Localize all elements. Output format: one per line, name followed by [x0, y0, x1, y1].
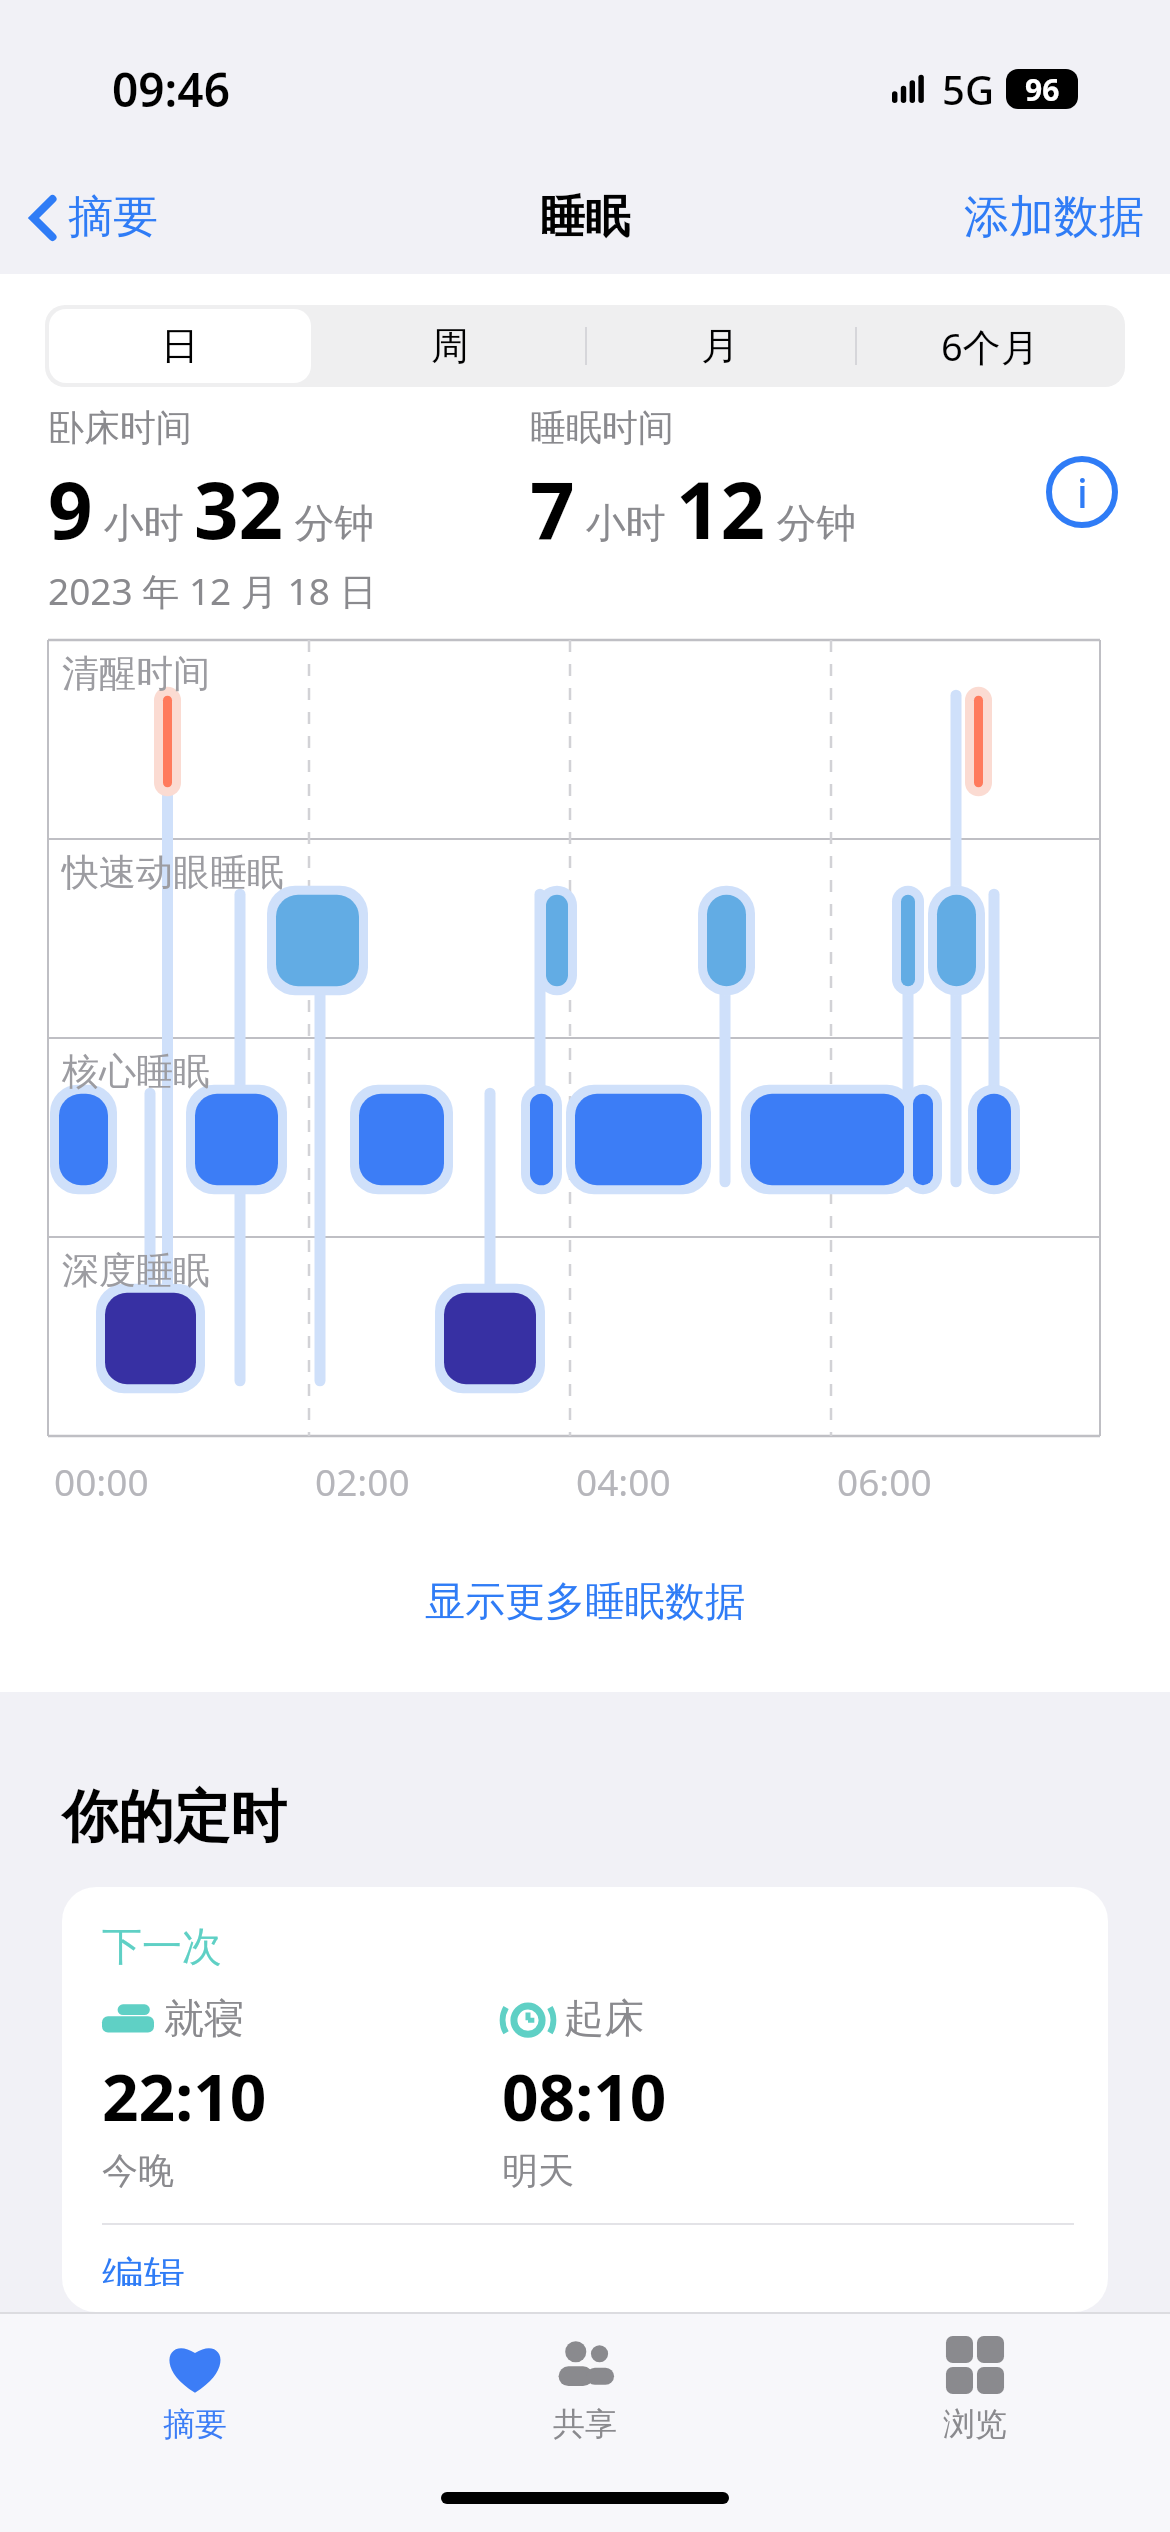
- button[interactable]: 摘要: [0, 2314, 390, 2464]
- staticText: 共享: [553, 2404, 617, 2444]
- staticText: 摘要: [68, 189, 158, 246]
- staticText: 5G: [942, 62, 994, 116]
- staticText: 08:10: [502, 2053, 667, 2140]
- button[interactable]: 显示更多睡眠数据: [409, 1560, 761, 1642]
- staticText: 核心睡眠: [62, 1048, 210, 1095]
- staticText: 小时: [93, 494, 194, 549]
- staticText: 明天: [502, 2148, 574, 2193]
- staticText: 快速动眼睡眠: [62, 849, 284, 896]
- button[interactable]: 信息: [1046, 456, 1118, 528]
- staticText: i: [1077, 465, 1088, 519]
- staticText: 深度睡眠: [62, 1247, 210, 1294]
- button[interactable]: 编辑: [102, 2225, 1074, 2312]
- button[interactable]: 摘要: [0, 181, 170, 254]
- staticText: 12: [676, 456, 766, 555]
- button[interactable]: 浏览: [780, 2314, 1170, 2464]
- staticText: 下一次: [102, 1921, 222, 1971]
- staticText: 04:00: [576, 1456, 671, 1506]
- staticText: 清醒时间: [62, 650, 210, 697]
- button[interactable]: 日: [45, 305, 315, 387]
- button[interactable]: 月: [585, 305, 855, 387]
- staticText: 32: [194, 456, 284, 555]
- staticText: 9: [48, 456, 93, 555]
- staticText: 月: [701, 322, 739, 370]
- button[interactable]: 周: [315, 305, 585, 387]
- staticText: 00:00: [54, 1456, 149, 1506]
- staticText: 周: [431, 322, 469, 370]
- staticText: 就寝: [164, 1993, 244, 2043]
- staticText: 睡眠: [540, 189, 630, 246]
- staticText: 7: [530, 456, 575, 555]
- staticText: 6个月: [941, 320, 1039, 372]
- staticText: 编辑: [102, 2251, 186, 2286]
- staticText: 日: [161, 322, 199, 370]
- button[interactable]: 共享: [390, 2314, 780, 2464]
- staticText: 起床: [564, 1993, 644, 2043]
- staticText: 卧床时间: [48, 405, 192, 450]
- staticText: 小时: [575, 494, 676, 549]
- button[interactable]: 6个月: [855, 305, 1125, 387]
- staticText: 22:10: [102, 2053, 267, 2140]
- staticText: 摘要: [163, 2404, 227, 2444]
- staticText: 睡眠时间: [530, 405, 674, 450]
- staticText: 你的定时: [62, 1782, 286, 1853]
- staticText: 分钟: [284, 494, 375, 549]
- staticText: 09:46: [112, 58, 230, 121]
- staticText: 浏览: [943, 2404, 1007, 2444]
- staticText: 06:00: [837, 1456, 932, 1506]
- staticText: 分钟: [766, 494, 857, 549]
- button[interactable]: 添加数据: [938, 179, 1170, 256]
- staticText: 96: [1025, 69, 1060, 109]
- staticText: 02:00: [315, 1456, 410, 1506]
- staticText: 2023 年 12 月 18 日: [48, 565, 377, 616]
- staticText: 今晚: [102, 2148, 174, 2193]
